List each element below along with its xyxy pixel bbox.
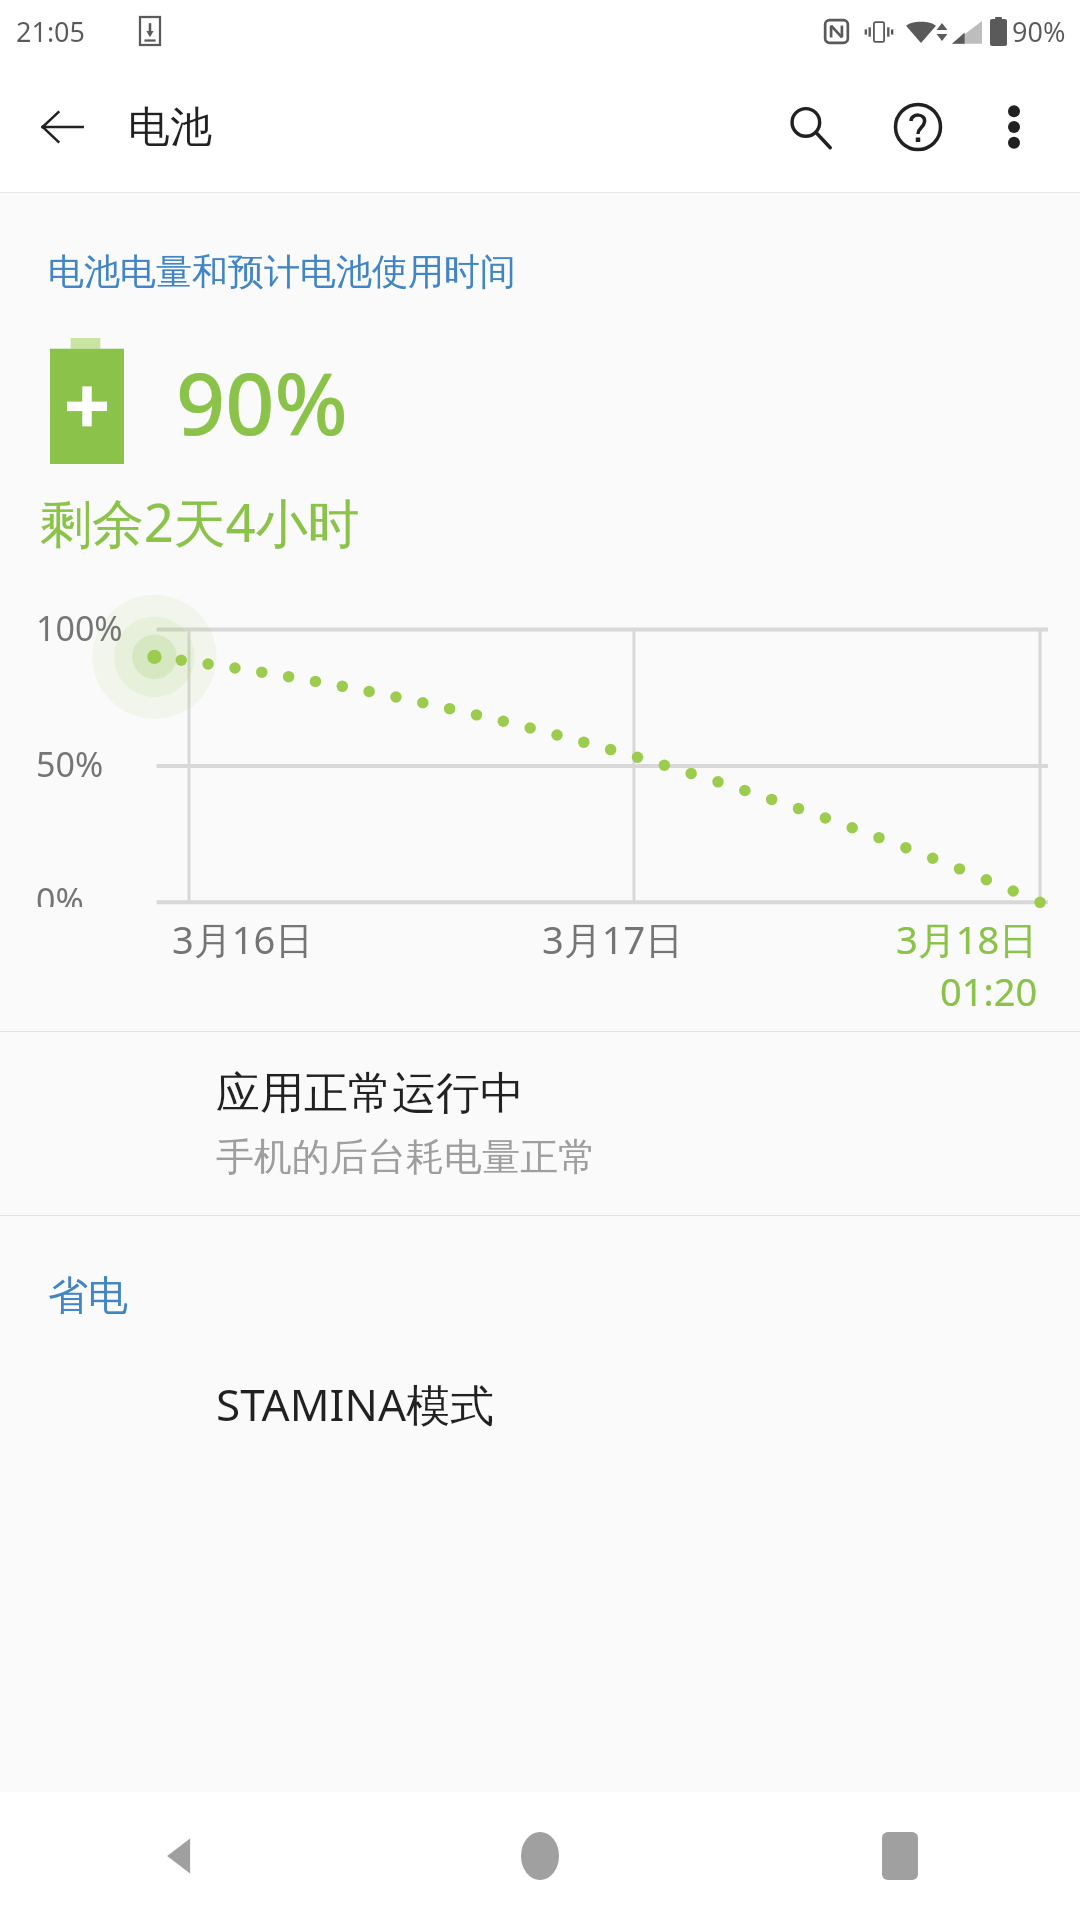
staticText: 3月17日 <box>542 913 684 965</box>
button[interactable]: More options <box>966 79 1062 175</box>
button[interactable]: Back <box>0 1792 360 1920</box>
staticText: 01:20 <box>940 965 1038 1017</box>
button[interactable]: 应用正常运行中 <box>0 1032 1080 1215</box>
button[interactable]: Recent apps <box>720 1792 1080 1920</box>
staticText: 3月16日 <box>172 913 314 965</box>
button[interactable]: Search <box>762 79 858 175</box>
button[interactable]: STAMINA模式 <box>0 1374 1080 1434</box>
staticText: 21:05 <box>16 13 86 50</box>
staticText: 电池 <box>128 101 212 154</box>
staticText: 剩余2天4小时 <box>40 486 360 557</box>
staticText: 50% <box>36 741 104 787</box>
staticText: 3月18日 <box>896 913 1038 965</box>
button[interactable]: Back <box>24 89 100 165</box>
staticText: 0% <box>36 877 84 907</box>
staticText: STAMINA模式 <box>216 1374 495 1434</box>
button[interactable]: Home <box>360 1792 720 1920</box>
staticText: 应用正常运行中 <box>216 1066 524 1121</box>
staticText: 手机的后台耗电量正常 <box>216 1133 596 1181</box>
staticText: 100% <box>36 605 123 651</box>
staticText: 省电 <box>48 1270 128 1320</box>
staticText: 电池电量和预计电池使用时间 <box>48 249 516 294</box>
staticText: 90% <box>1012 13 1066 50</box>
button[interactable]: Help <box>870 79 966 175</box>
staticText: 90% <box>176 343 348 460</box>
